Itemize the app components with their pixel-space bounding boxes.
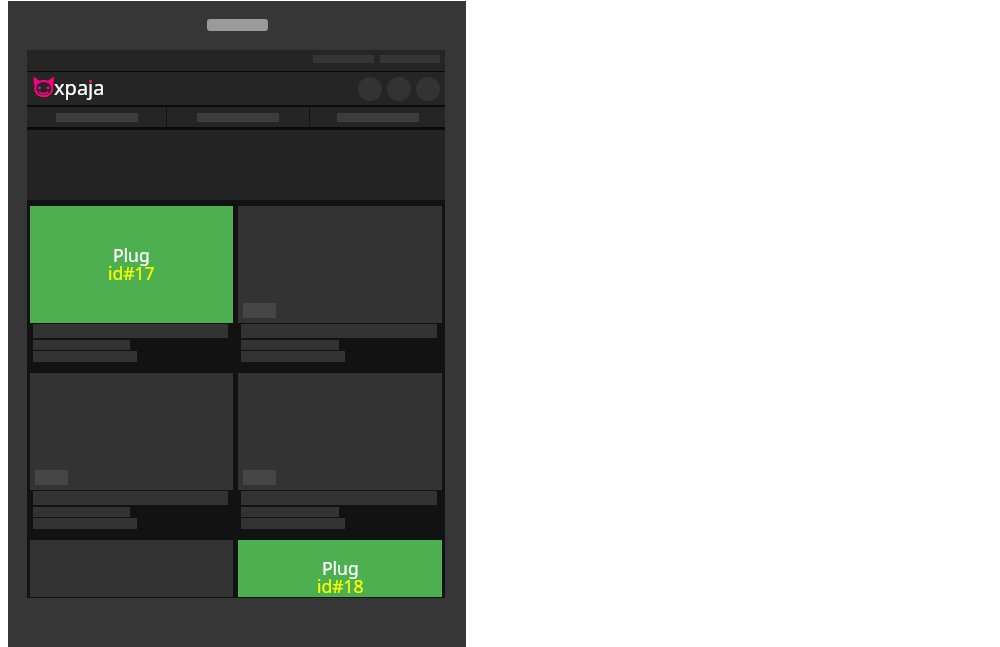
staticText: xpaja bbox=[54, 74, 105, 101]
button[interactable] bbox=[310, 107, 445, 127]
button[interactable] bbox=[30, 373, 233, 529]
button[interactable] bbox=[167, 107, 309, 127]
button[interactable]: Action bbox=[416, 77, 440, 101]
button[interactable]: Plug bbox=[30, 206, 233, 362]
button[interactable] bbox=[238, 206, 442, 362]
button[interactable]: Plug bbox=[238, 540, 442, 597]
button[interactable] bbox=[238, 373, 442, 529]
staticText: Plug bbox=[113, 243, 150, 267]
button[interactable] bbox=[27, 107, 166, 127]
staticText: Plug bbox=[322, 556, 359, 580]
staticText: id#18 bbox=[317, 574, 364, 597]
button[interactable]: Action bbox=[387, 77, 411, 101]
button[interactable]: Action bbox=[358, 77, 382, 101]
staticText: id#17 bbox=[108, 261, 155, 285]
button[interactable]: xpaja home bbox=[27, 72, 131, 105]
